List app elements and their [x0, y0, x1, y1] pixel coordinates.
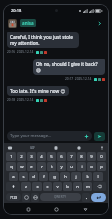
button[interactable]: 8: [77, 152, 86, 161]
button[interactable]: Home: [51, 204, 61, 214]
staticText: 20:17 2025-12-14: [65, 77, 92, 81]
button[interactable]: t: [47, 162, 56, 171]
button[interactable]: s: [19, 172, 28, 181]
staticText: r: [41, 164, 43, 170]
button[interactable]: Oh no, should I give it back? 😅: [33, 59, 105, 75]
button[interactable]: k: [82, 172, 92, 181]
staticText: anisa: [22, 20, 34, 26]
staticText: m: [86, 184, 90, 190]
button[interactable]: i: [77, 162, 86, 171]
staticText: 5: [50, 154, 53, 160]
button[interactable]: Language: [31, 193, 39, 202]
button[interactable]: 2: [17, 152, 26, 161]
staticText: d: [32, 174, 35, 180]
button[interactable]: c: [43, 182, 52, 191]
staticText: v: [56, 184, 59, 190]
button[interactable]: m: [83, 182, 92, 191]
button[interactable]: 6: [57, 152, 66, 161]
button[interactable]: l: [93, 172, 103, 181]
button[interactable]: p: [97, 162, 106, 171]
staticText: o: [90, 164, 93, 170]
staticText: 1: [10, 154, 13, 160]
button[interactable]: Too late. It's mine now 😊: [7, 86, 69, 96]
button[interactable]: anisa: [4, 16, 108, 30]
button[interactable]: v: [53, 182, 62, 191]
button[interactable]: Clipboard: [53, 145, 59, 151]
button[interactable]: Enter: [91, 193, 106, 202]
button[interactable]: n: [73, 182, 82, 191]
staticText: 8: [80, 154, 83, 160]
button[interactable]: Recents: [23, 204, 33, 214]
button[interactable]: More options: [95, 19, 104, 28]
button[interactable]: Emoji: [22, 193, 30, 202]
staticText: Oh no, should I give it back? 😅: [36, 61, 102, 73]
staticText: 20:18: [11, 8, 22, 13]
button[interactable]: h: [60, 172, 70, 181]
button[interactable]: QWERTY: [40, 193, 81, 201]
button[interactable]: Type your message...: [7, 131, 92, 141]
button[interactable]: y: [57, 162, 66, 171]
button[interactable]: g: [49, 172, 59, 181]
staticText: 4: [40, 154, 43, 160]
staticText: b: [66, 184, 69, 190]
button[interactable]: f: [39, 172, 48, 181]
staticText: t: [51, 164, 53, 170]
staticText: 20:18 2025-12-14: [7, 98, 34, 102]
button[interactable]: 0: [97, 152, 106, 161]
button[interactable]: Attach: [84, 134, 89, 139]
button[interactable]: Back: [80, 204, 90, 214]
staticText: 7: [70, 154, 73, 160]
staticText: z: [25, 184, 27, 190]
button[interactable]: ?123: [6, 193, 21, 201]
button[interactable]: Keyboard settings: [7, 145, 13, 151]
button[interactable]: a: [9, 172, 18, 181]
staticText: h: [64, 174, 67, 180]
staticText: 2: [20, 154, 23, 160]
staticText: 0: [100, 154, 103, 160]
button[interactable]: u: [67, 162, 76, 171]
button[interactable]: b: [63, 182, 72, 191]
staticText: x: [36, 184, 39, 190]
button[interactable]: r: [37, 162, 46, 171]
button[interactable]: 4: [37, 152, 46, 161]
staticText: g: [53, 174, 56, 180]
staticText: 3: [30, 154, 33, 160]
button[interactable]: 9: [87, 152, 96, 161]
button[interactable]: 7: [67, 152, 76, 161]
button[interactable]: GIF: [30, 146, 35, 150]
button[interactable]: j: [71, 172, 81, 181]
button[interactable]: d: [29, 172, 38, 181]
button[interactable]: 1: [6, 152, 16, 161]
button[interactable]: Backspace: [93, 182, 106, 191]
button[interactable]: Voice input: [99, 145, 105, 151]
button[interactable]: Stickers: [76, 145, 82, 151]
button[interactable]: Send: [94, 132, 105, 141]
staticText: n: [76, 184, 79, 190]
staticText: i: [81, 164, 83, 170]
button[interactable]: w: [17, 162, 26, 171]
button[interactable]: Careful, I think you just stole my atten…: [7, 32, 79, 48]
staticText: Type your message...: [10, 133, 52, 139]
button[interactable]: Period: [82, 193, 90, 202]
staticText: k: [86, 174, 89, 180]
button[interactable]: o: [87, 162, 96, 171]
staticText: Careful, I think you just stole my atten…: [10, 34, 76, 46]
staticText: s: [22, 174, 25, 180]
staticText: q: [10, 164, 13, 170]
button[interactable]: Shift: [6, 182, 20, 191]
staticText: 9: [90, 154, 93, 160]
staticText: ?123: [10, 195, 18, 200]
staticText: Too late. It's mine now 😊: [10, 88, 66, 94]
staticText: j: [75, 174, 77, 180]
staticText: f: [43, 174, 45, 180]
staticText: c: [46, 184, 49, 190]
staticText: 20:16 2025-12-14: [7, 50, 34, 54]
button[interactable]: x: [32, 182, 42, 191]
staticText: u: [70, 164, 73, 170]
button[interactable]: q: [6, 162, 16, 171]
button[interactable]: 5: [47, 152, 56, 161]
button[interactable]: e: [27, 162, 36, 171]
button[interactable]: z: [21, 182, 31, 191]
button[interactable]: 3: [27, 152, 36, 161]
staticText: QWERTY: [54, 195, 67, 199]
